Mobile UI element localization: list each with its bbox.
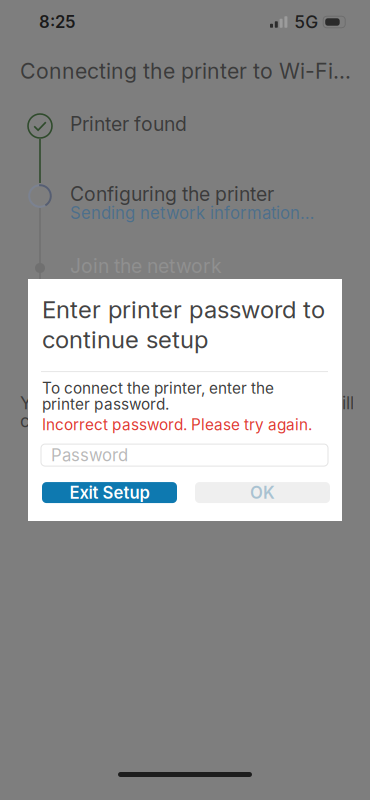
- staticText: Configuring the printer: [70, 182, 274, 206]
- staticText: Incorrect password. Please try again.: [42, 415, 312, 434]
- staticText: Password: [51, 445, 128, 465]
- staticText: Printer found: [70, 112, 187, 136]
- staticText: You can close this screen, the printer w…: [20, 392, 354, 413]
- staticText: continue to connect.: [20, 410, 187, 431]
- staticText: continue setup: [42, 325, 208, 354]
- staticText: To connect the printer, enter the: [42, 379, 274, 397]
- staticText: Enter printer password to: [42, 295, 325, 324]
- staticText: 5G: [294, 11, 318, 32]
- button[interactable]: OK: [195, 482, 330, 503]
- button[interactable]: Exit Setup: [42, 482, 177, 503]
- staticText: Join the network: [70, 254, 222, 278]
- staticText: Sending network information…: [70, 203, 314, 223]
- staticText: Connecting the printer to Wi-Fi…: [20, 58, 351, 84]
- staticText: OK: [250, 482, 275, 503]
- staticText: 8:25: [39, 12, 75, 32]
- staticText: Exit Setup: [69, 482, 149, 503]
- staticText: printer password.: [42, 395, 169, 413]
